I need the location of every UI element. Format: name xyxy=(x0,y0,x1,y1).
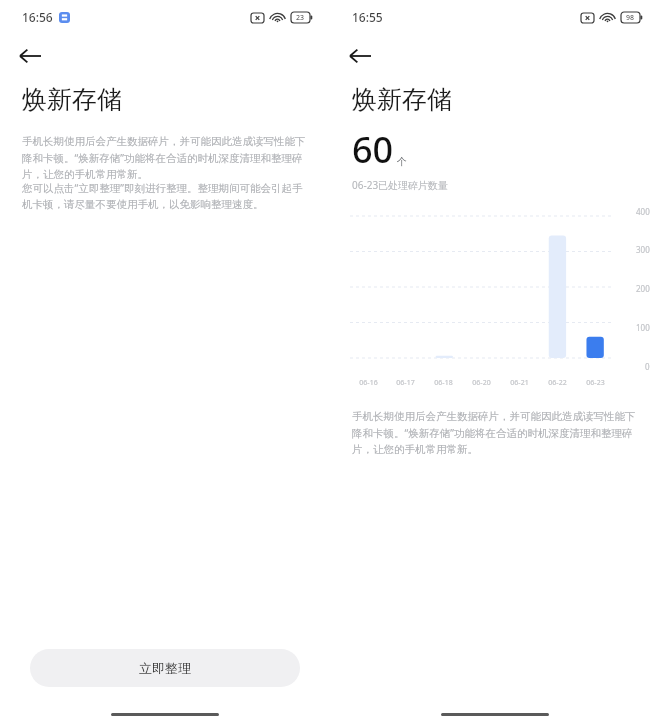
staticText: 60 xyxy=(352,125,394,174)
staticText: 98 xyxy=(626,13,635,23)
staticText: 06-17 xyxy=(396,378,415,388)
button[interactable]: Back xyxy=(338,34,382,78)
staticText: 0 xyxy=(645,361,650,372)
staticText: 06-16 xyxy=(359,378,378,388)
staticText: 16:56 xyxy=(22,9,53,25)
staticText: 个 xyxy=(397,155,407,168)
button[interactable]: 立即整理 xyxy=(30,649,300,687)
staticText: 您可以点击“立即整理”即刻进行整理。整理期间可能会引起手机卡顿，请尽量不要使用手… xyxy=(22,181,310,211)
staticText: 06-18 xyxy=(434,378,453,388)
staticText: 立即整理 xyxy=(139,660,191,676)
staticText: 焕新存储 xyxy=(22,84,122,115)
staticText: 16:55 xyxy=(352,9,383,25)
staticText: 06-23 xyxy=(586,378,605,388)
staticText: 06-21 xyxy=(510,378,529,388)
staticText: 100 xyxy=(636,322,650,333)
staticText: 300 xyxy=(636,244,650,255)
staticText: 焕新存储 xyxy=(352,84,452,115)
staticText: 400 xyxy=(636,206,650,217)
staticText: 200 xyxy=(636,283,650,294)
staticText: 手机长期使用后会产生数据碎片，并可能因此造成读写性能下降和卡顿。“焕新存储”功能… xyxy=(352,410,642,456)
staticText: 23 xyxy=(296,13,305,23)
button[interactable]: Back xyxy=(8,34,52,78)
staticText: 手机长期使用后会产生数据碎片，并可能因此造成读写性能下降和卡顿。“焕新存储”功能… xyxy=(22,135,310,181)
staticText: 06-22 xyxy=(548,378,567,388)
staticText: 06-20 xyxy=(472,378,491,388)
staticText: 06-23已处理碎片数量 xyxy=(352,178,449,192)
